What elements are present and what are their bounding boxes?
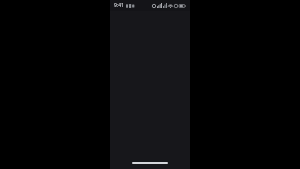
staticText: 9:41 — [114, 2, 124, 9]
button[interactable]: System status icons — [152, 3, 186, 8]
button[interactable]: 9:41 — [114, 2, 124, 9]
button[interactable]: Home — [132, 162, 168, 164]
